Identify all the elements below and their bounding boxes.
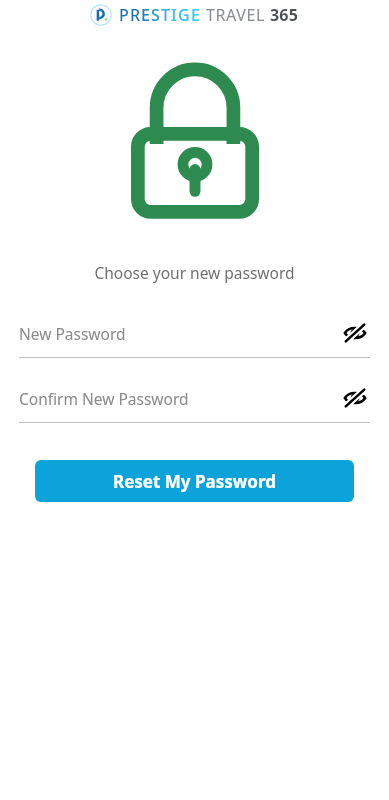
staticText: P	[119, 4, 130, 26]
staticText: Confirm New Password	[19, 388, 340, 409]
staticText: 365	[270, 4, 299, 26]
staticText: Reset My Password	[113, 470, 276, 493]
staticText: E	[141, 4, 151, 26]
button[interactable]: Show confirm password	[340, 383, 370, 413]
staticText: Choose your new password	[94, 262, 295, 283]
staticText: I	[171, 4, 178, 26]
button[interactable]: Reset My Password	[35, 460, 354, 502]
staticText: G	[178, 4, 191, 26]
staticText: E	[191, 4, 201, 26]
button[interactable]: Show new password	[340, 318, 370, 348]
staticText: R	[130, 4, 141, 26]
staticText: T	[161, 4, 171, 26]
staticText: S	[151, 4, 161, 26]
staticText: TRAVEL	[206, 4, 265, 26]
staticText: New Password	[19, 323, 340, 344]
